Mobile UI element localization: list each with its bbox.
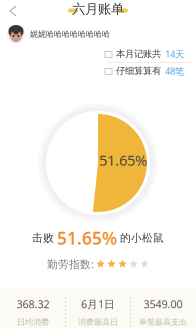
staticText: 妮妮哈哈哈哈哈哈哈哈 (30, 29, 110, 39)
staticText: 51.65% (57, 226, 117, 249)
staticText: 3549.00 (143, 297, 182, 311)
staticText: 六月账单 (72, 1, 124, 17)
staticText: 日均消费 (17, 317, 49, 327)
staticText: 14天 (165, 48, 184, 60)
staticText: 仔细算算有 (116, 65, 161, 77)
staticText: 单笔最高支出 (139, 317, 187, 327)
staticText: 击败 (32, 231, 54, 244)
staticText: 51.65% (99, 150, 147, 170)
staticText: 的小松鼠 (120, 231, 164, 244)
button[interactable]: Back (4, 0, 22, 22)
staticText: 48笔 (165, 65, 184, 77)
staticText: 368.32 (16, 297, 49, 311)
staticText: 本月记账共 (116, 48, 161, 60)
staticText: 勤劳指数: (47, 257, 94, 271)
staticText: 消费最高日 (78, 317, 118, 327)
staticText: 6月1日 (81, 297, 115, 311)
